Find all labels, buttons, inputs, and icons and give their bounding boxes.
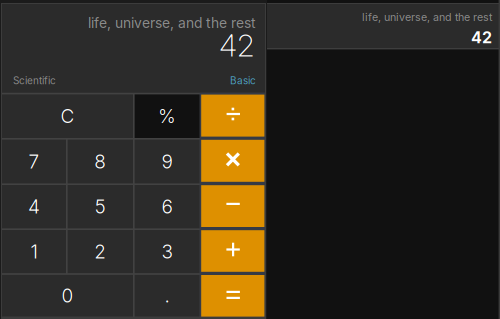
staticText: 7	[28, 150, 39, 173]
button[interactable]: Basic	[230, 74, 256, 87]
staticText: 2	[94, 240, 106, 263]
staticText: 6	[162, 195, 173, 218]
button[interactable]: 6	[135, 185, 200, 228]
button[interactable]: Divide	[201, 95, 264, 137]
button[interactable]: 3	[135, 230, 200, 273]
staticText: life, universe, and the rest	[88, 15, 256, 31]
staticText: 1	[30, 240, 37, 263]
staticText: C	[60, 105, 74, 128]
button[interactable]: Multiply	[201, 140, 264, 182]
staticText: life, universe, and the rest	[362, 10, 492, 23]
staticText: .	[165, 284, 170, 307]
button[interactable]: Scientific	[13, 74, 56, 87]
button[interactable]: C	[2, 94, 133, 138]
staticText: 42	[471, 28, 492, 47]
staticText: 3	[162, 240, 173, 263]
button[interactable]: .	[135, 275, 200, 317]
button[interactable]: 0	[2, 275, 133, 317]
button[interactable]: 4	[2, 185, 66, 228]
staticText: 4	[28, 195, 40, 218]
button[interactable]: Add	[201, 230, 264, 272]
staticText: Scientific	[13, 74, 56, 87]
staticText: 8	[94, 150, 106, 173]
staticText: 42	[219, 27, 254, 64]
button[interactable]: 9	[135, 140, 200, 183]
button[interactable]: 8	[68, 140, 133, 183]
button[interactable]: 5	[68, 185, 133, 228]
staticText: %	[158, 105, 176, 128]
button[interactable]: 2	[68, 230, 133, 273]
button[interactable]: 1	[2, 230, 66, 273]
button[interactable]: Subtract	[201, 185, 264, 227]
staticText: 0	[61, 284, 73, 307]
button[interactable]: Equals	[201, 275, 264, 317]
button[interactable]: %	[135, 94, 200, 138]
staticText: 5	[95, 195, 106, 218]
button[interactable]: 7	[2, 140, 66, 183]
staticText: 9	[162, 150, 173, 173]
staticText: Basic	[230, 74, 256, 87]
